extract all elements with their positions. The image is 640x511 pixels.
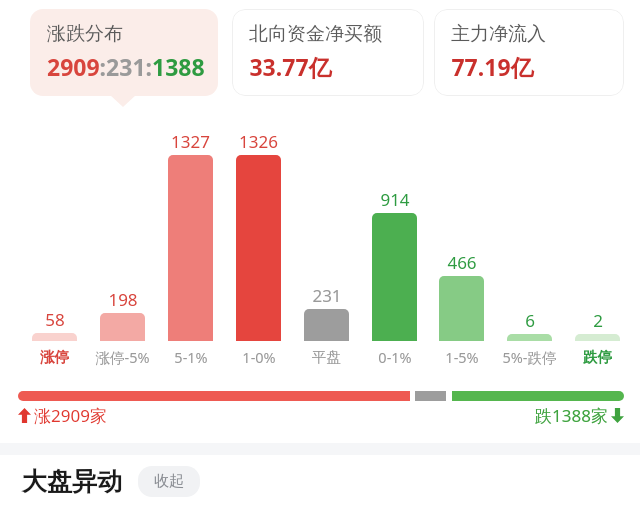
button[interactable]: 231 xyxy=(304,281,349,341)
staticText: 1-5% xyxy=(445,347,479,367)
button[interactable]: 58 xyxy=(32,305,77,341)
staticText: 77.19亿 xyxy=(451,51,534,82)
button[interactable]: 主力净流入 xyxy=(434,9,624,96)
staticText: 收起 xyxy=(154,472,184,491)
staticText: 涨停 xyxy=(40,348,69,366)
staticText: 2909:231:1388 xyxy=(47,51,205,82)
staticText: 466 xyxy=(447,251,477,274)
staticText: 平盘 xyxy=(312,348,341,366)
staticText: 1-0% xyxy=(242,347,276,367)
staticText: 33.77亿 xyxy=(249,51,332,82)
staticText: 6 xyxy=(525,309,535,332)
button[interactable]: 1327 xyxy=(168,127,213,341)
staticText: 5-1% xyxy=(174,347,208,367)
staticText: 1327 xyxy=(171,130,210,153)
staticText: 58 xyxy=(45,308,65,331)
button[interactable]: 914 xyxy=(372,185,417,341)
staticText: 大盘异动 xyxy=(22,466,122,497)
staticText: 0-1% xyxy=(378,347,412,367)
staticText: 1326 xyxy=(239,130,278,153)
staticText: 涨跌分布 xyxy=(47,22,123,46)
button[interactable]: 466 xyxy=(439,248,484,341)
button[interactable]: 198 xyxy=(100,285,145,341)
button[interactable]: 收起 xyxy=(138,466,200,497)
button[interactable]: 6 xyxy=(507,306,552,341)
staticText: 涨2909家 xyxy=(34,404,107,427)
staticText: 198 xyxy=(108,288,138,311)
staticText: 231 xyxy=(312,284,342,307)
other: Down xyxy=(611,408,624,423)
staticText: 2 xyxy=(593,309,603,332)
staticText: 跌停 xyxy=(583,348,612,366)
button[interactable]: 北向资金净买额 xyxy=(232,9,424,96)
staticText: 北向资金净买额 xyxy=(249,22,382,46)
staticText: 5%-跌停 xyxy=(502,347,557,367)
other: Up xyxy=(18,408,31,423)
staticText: 涨停-5% xyxy=(95,347,150,367)
button[interactable]: 1326 xyxy=(236,127,281,341)
button[interactable]: 涨跌分布 xyxy=(30,9,218,96)
button[interactable]: 2 xyxy=(575,306,620,341)
staticText: 跌1388家 xyxy=(535,404,608,427)
staticText: 主力净流入 xyxy=(451,22,546,46)
staticText: 914 xyxy=(380,188,410,211)
